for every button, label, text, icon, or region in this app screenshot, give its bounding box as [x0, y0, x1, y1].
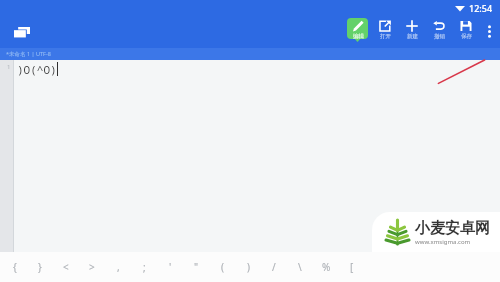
staticText: ) [247, 260, 250, 274]
staticText: 12:54 [469, 2, 493, 14]
button[interactable]: ) [235, 252, 261, 282]
staticText: ' [169, 260, 172, 274]
staticText: 保存 [461, 33, 472, 40]
button[interactable]: " [183, 252, 209, 282]
button[interactable]: ; [131, 252, 157, 282]
staticText: } [38, 260, 42, 274]
button[interactable]: , [105, 252, 131, 282]
button[interactable]: \ [287, 252, 313, 282]
button[interactable]: / [261, 252, 287, 282]
staticText: \ [298, 260, 302, 274]
staticText: , [117, 260, 120, 274]
staticText: [ [350, 260, 354, 274]
staticText: *未命名 1 | UTF-8 [6, 50, 51, 58]
button[interactable]: 打开 [371, 15, 398, 48]
staticText: )O(^O) [17, 62, 57, 77]
staticText: < [63, 260, 69, 274]
staticText: % [322, 260, 331, 274]
button[interactable]: [ [339, 252, 365, 282]
button[interactable]: *未命名 1 | UTF-8 [0, 48, 500, 60]
staticText: " [194, 260, 199, 274]
button[interactable]: { [2, 252, 27, 282]
staticText: 新建 [407, 33, 418, 40]
button[interactable]: 新建 [398, 15, 425, 48]
button[interactable]: < [53, 252, 79, 282]
button[interactable]: 编辑 [344, 15, 371, 48]
button[interactable]: Open file manager [6, 16, 38, 48]
staticText: 小麦安卓网 [415, 219, 490, 238]
button[interactable]: ( [209, 252, 235, 282]
button[interactable]: More options [479, 15, 499, 48]
staticText: { [13, 260, 17, 274]
button[interactable]: ' [157, 252, 183, 282]
staticText: ( [221, 260, 224, 274]
staticText: / [272, 260, 276, 274]
staticText: > [89, 260, 95, 274]
button[interactable]: 撤销 [425, 15, 452, 48]
button[interactable]: > [79, 252, 105, 282]
staticText: 打开 [380, 33, 391, 40]
staticText: 编辑 [353, 33, 364, 40]
staticText: 1 [7, 63, 11, 71]
staticText: 撤销 [434, 33, 445, 40]
staticText: www.xmsigma.com [415, 238, 471, 246]
button[interactable]: % [313, 252, 339, 282]
staticText: ; [143, 260, 146, 274]
button[interactable]: } [27, 252, 53, 282]
button[interactable]: 保存 [452, 15, 479, 48]
